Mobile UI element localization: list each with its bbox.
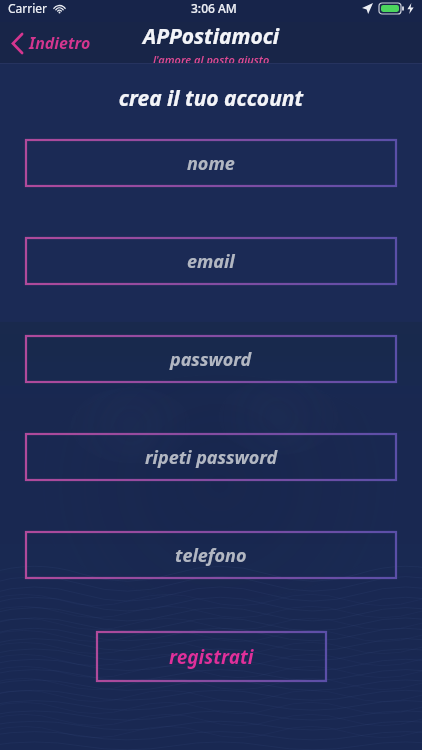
staticText: Carrier [8,0,48,16]
staticText: l'amore al posto giusto [153,52,270,64]
staticText: crea il tuo account [0,84,422,113]
button[interactable]: registrati [97,632,326,681]
button[interactable]: ripeti password [26,434,396,480]
button[interactable]: nome [26,140,396,186]
button[interactable]: email [26,238,396,284]
staticText: registrati [169,644,254,670]
staticText: password [170,347,252,372]
button[interactable]: Indietro [8,28,95,58]
staticText: nome [187,151,235,176]
button[interactable]: telefono [26,532,396,578]
staticText: telefono [175,543,247,568]
staticText: Indietro [29,32,91,54]
staticText: ripeti password [145,445,278,470]
staticText: 3:06 AM [191,0,237,16]
staticText: APPostiamoci [143,22,280,51]
button[interactable]: password [26,336,396,382]
staticText: email [187,249,235,274]
